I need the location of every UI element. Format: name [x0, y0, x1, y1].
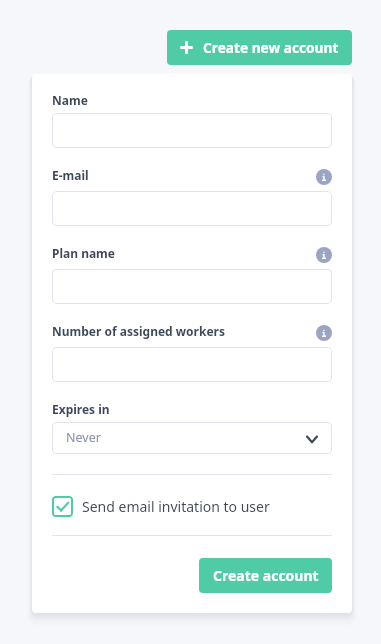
button[interactable]: Name	[52, 113, 332, 148]
staticText: Plan name	[52, 245, 115, 261]
staticText: Send email invitation to user	[82, 497, 270, 516]
staticText: Expires in	[52, 401, 110, 417]
button[interactable]: More information	[316, 169, 332, 185]
button[interactable]: E-mail	[52, 191, 332, 226]
button[interactable]: Plan name	[52, 269, 332, 304]
staticText: Name	[52, 92, 88, 108]
staticText: Create new account	[203, 38, 339, 57]
staticText: Create account	[213, 566, 319, 585]
staticText: Number of assigned workers	[52, 323, 225, 339]
staticText: E-mail	[52, 167, 89, 183]
button[interactable]: Never	[52, 422, 332, 454]
staticText: Never	[66, 429, 101, 446]
button[interactable]: Create new account	[167, 30, 352, 65]
button[interactable]: More information	[316, 325, 332, 341]
button[interactable]: Create account	[199, 558, 332, 593]
button[interactable]: More information	[316, 247, 332, 263]
button[interactable]: Send email invitation to user	[52, 494, 332, 518]
button[interactable]: Number of assigned workers	[52, 347, 332, 382]
